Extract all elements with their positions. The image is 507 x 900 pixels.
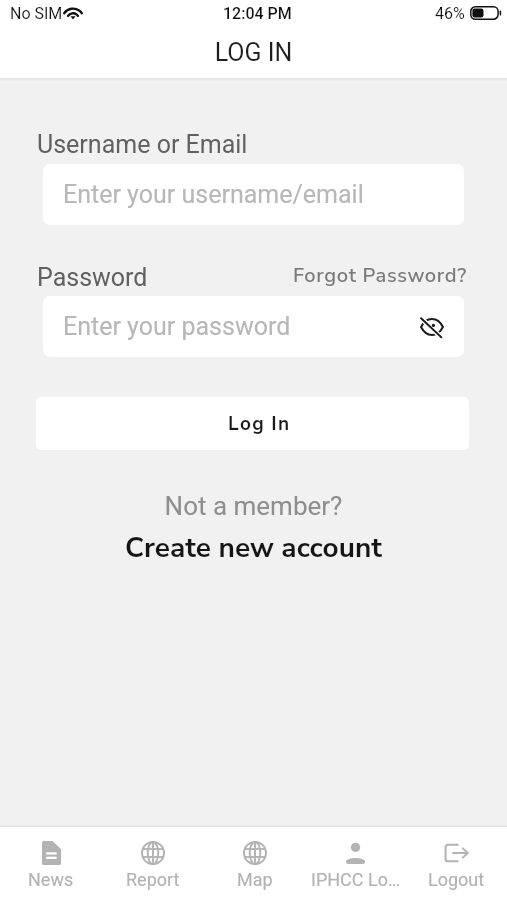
staticText: Password (37, 263, 148, 292)
staticText: 46% (435, 4, 465, 23)
button[interactable]: Log In (36, 397, 469, 450)
staticText: News (28, 869, 74, 890)
staticText: Map (237, 869, 273, 890)
staticText: Log In (228, 411, 291, 437)
staticText: IPHCC Lo… (311, 869, 400, 890)
staticText: No SIM (10, 4, 63, 23)
staticText: Not a member? (0, 491, 507, 521)
staticText: Enter your password (63, 312, 291, 341)
button[interactable]: News (0, 827, 102, 900)
button[interactable]: Enter your password (43, 296, 464, 357)
staticText: Forgot Password? (293, 262, 467, 289)
staticText: LOG IN (0, 38, 507, 67)
button[interactable]: Enter your username/email (43, 164, 464, 225)
staticText: Enter your username/email (63, 180, 364, 209)
button[interactable]: Map (204, 827, 305, 900)
staticText: Username or Email (37, 130, 248, 159)
button[interactable]: Show password (417, 312, 447, 342)
button[interactable]: Report (102, 827, 204, 900)
button[interactable]: Forgot Password? (290, 259, 470, 292)
staticText: Logout (428, 869, 485, 890)
staticText: Report (126, 869, 180, 890)
button[interactable]: Logout (406, 827, 507, 900)
button[interactable]: Create new account (0, 529, 507, 567)
button[interactable]: IPHCC Lo… (305, 827, 406, 900)
staticText: 12:04 PM (223, 4, 292, 23)
